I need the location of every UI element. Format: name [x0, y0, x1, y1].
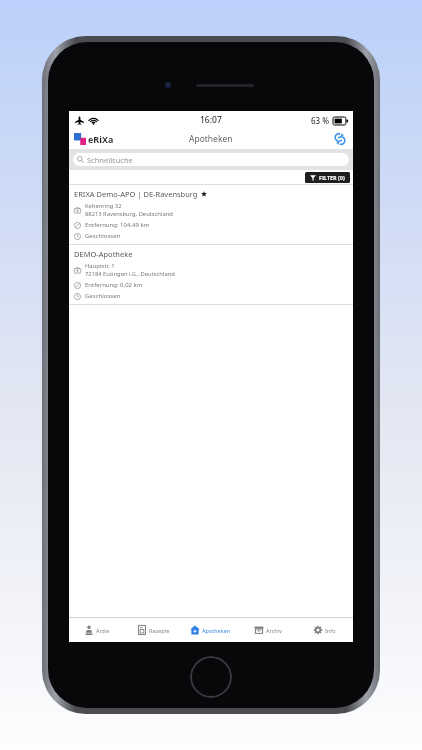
staticText: 72184 Eutingen i.G., Deutschland: [85, 270, 175, 278]
staticText: Apotheken: [189, 133, 233, 145]
staticText: eRiXa: [88, 133, 114, 145]
button[interactable]: Info: [296, 618, 353, 642]
button[interactable]: ERIXA Demo-APO | DE-Ravensburg: [69, 185, 353, 244]
button[interactable]: DEMO-Apotheke: [69, 245, 353, 304]
staticText: 16:07: [200, 114, 222, 126]
staticText: Entfernung: 0,02 km: [85, 281, 143, 289]
staticText: ERIXA Demo-APO | DE-Ravensburg: [74, 189, 198, 199]
button[interactable]: FILTER (0): [305, 172, 350, 183]
staticText: Ärzte: [96, 627, 110, 634]
button[interactable]: Rezepte: [125, 618, 182, 642]
staticText: 63 %: [311, 115, 330, 126]
staticText: Schnellsuche: [87, 155, 133, 165]
staticText: Apotheken: [202, 627, 231, 634]
staticText: Archiv: [266, 627, 282, 634]
staticText: Rezepte: [149, 627, 170, 634]
staticText: 88213 Ravensburg, Deutschland: [85, 210, 173, 218]
staticText: FILTER (0): [319, 174, 345, 181]
staticText: Keltenring 32: [85, 202, 122, 210]
button[interactable]: Aktualisieren: [332, 131, 348, 147]
button[interactable]: Archiv: [239, 618, 296, 642]
button[interactable]: Schnellsuche: [73, 153, 349, 166]
staticText: Geschlossen: [85, 292, 121, 300]
staticText: DEMO-Apotheke: [74, 249, 133, 259]
staticText: Hauptstr. 1: [85, 262, 115, 270]
button[interactable]: Apotheken: [182, 618, 239, 642]
button[interactable]: Ärzte: [69, 618, 125, 642]
staticText: Geschlossen: [85, 232, 121, 240]
staticText: Info: [325, 627, 336, 634]
staticText: Entfernung: 104,49 km: [85, 221, 150, 229]
